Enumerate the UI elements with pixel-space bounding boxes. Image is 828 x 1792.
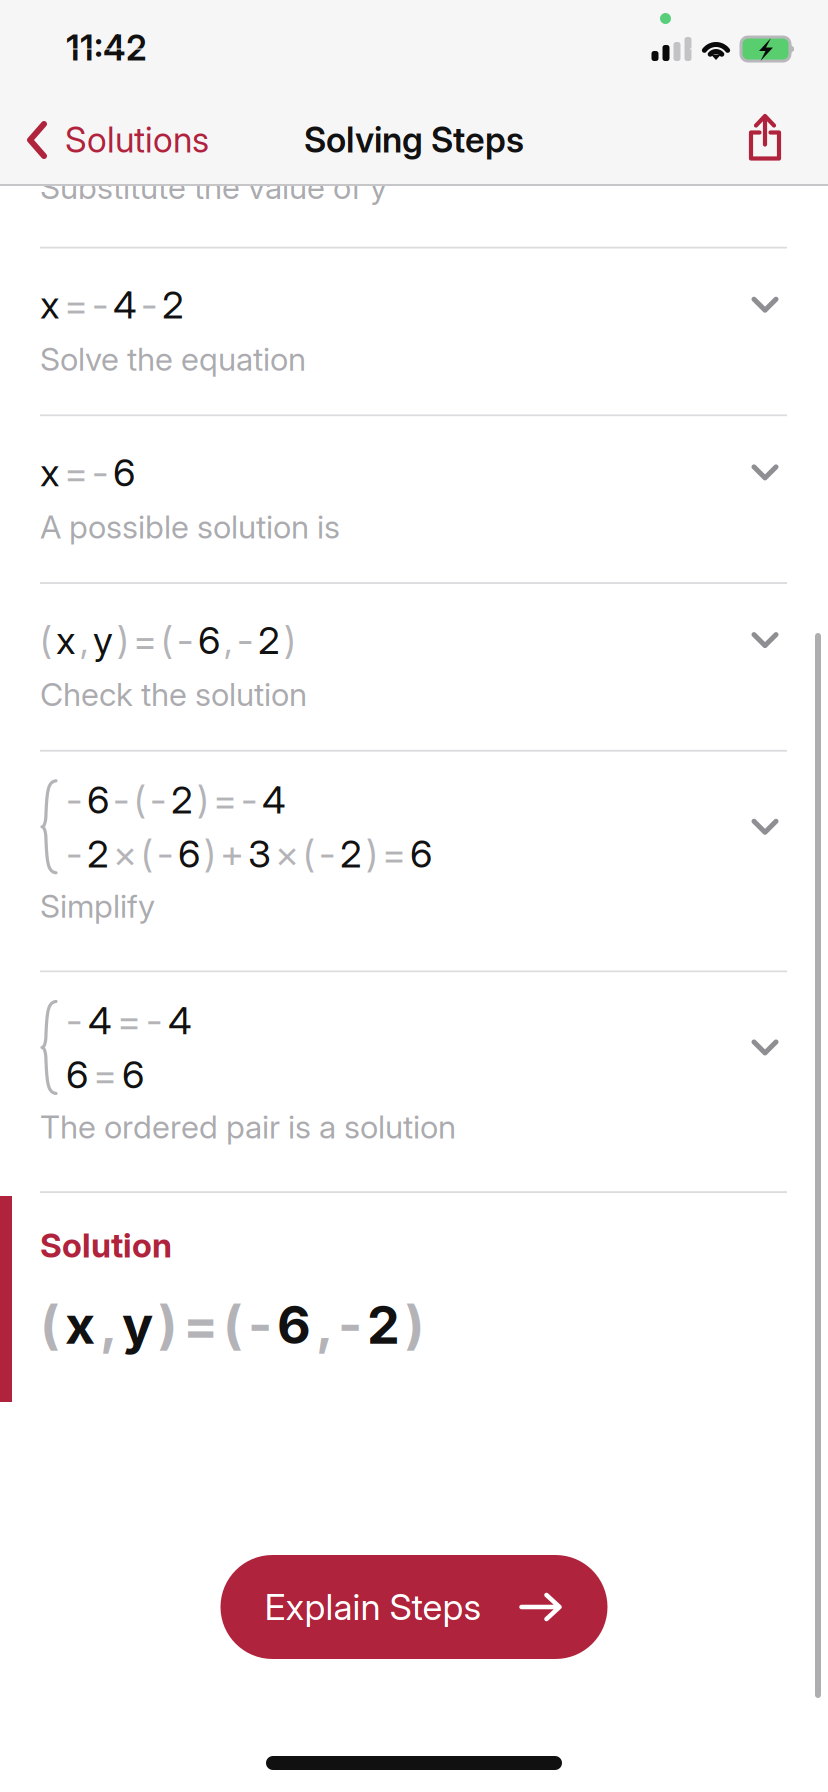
staticText: ( <box>134 777 146 823</box>
staticText: Explain Steps <box>264 1585 481 1629</box>
staticText: = <box>93 1051 117 1097</box>
staticText: 4 <box>88 997 112 1043</box>
staticText: 2 <box>171 777 193 823</box>
button[interactable]: x <box>0 416 828 584</box>
staticText: ) <box>405 1293 425 1356</box>
staticText: ) <box>284 617 296 663</box>
staticText: 4 <box>113 282 137 328</box>
staticText: 3 <box>248 831 271 877</box>
staticText: 6 <box>113 449 135 495</box>
staticText: = <box>213 777 237 823</box>
staticText: - <box>92 449 109 495</box>
staticText: = <box>64 449 88 495</box>
staticText: - <box>237 617 254 663</box>
staticText: Check the solution <box>40 675 307 714</box>
staticText: 2 <box>258 617 280 663</box>
staticText: ) <box>366 831 378 877</box>
staticText: , <box>316 1293 333 1356</box>
staticText: - <box>66 997 83 1043</box>
staticText: - <box>157 831 174 877</box>
staticText: ( <box>40 617 52 663</box>
staticText: × <box>275 831 299 877</box>
staticText: - <box>92 282 109 328</box>
staticText: 6 <box>87 777 109 823</box>
staticText: , <box>100 1293 117 1356</box>
staticText: ( <box>141 831 153 877</box>
staticText: 6 <box>66 1051 88 1097</box>
button[interactable]: Explain Steps <box>220 1555 607 1659</box>
staticText: ( <box>40 1293 60 1356</box>
staticText: , <box>80 617 89 663</box>
staticText: - <box>241 777 258 823</box>
staticText: × <box>113 831 137 877</box>
button[interactable]: - <box>0 972 828 1193</box>
staticText: = <box>133 617 157 663</box>
button[interactable]: ( <box>0 584 828 752</box>
staticText: 6 <box>122 1051 144 1097</box>
staticText: Solutions <box>65 119 209 161</box>
staticText: 6 <box>178 831 200 877</box>
staticText: 2 <box>340 831 362 877</box>
staticText: Solution <box>40 1225 172 1265</box>
staticText: - <box>248 1293 272 1356</box>
button[interactable]: Share <box>748 96 828 184</box>
button[interactable]: x <box>0 249 828 416</box>
staticText: - <box>319 831 336 877</box>
staticText: ) <box>204 831 216 877</box>
staticText: 4 <box>262 777 286 823</box>
staticText: ) <box>158 1293 178 1356</box>
staticText: x <box>56 617 76 663</box>
staticText: A possible solution is <box>40 507 340 546</box>
staticText: - <box>141 282 158 328</box>
staticText: + <box>220 831 244 877</box>
staticText: 6 <box>410 831 432 877</box>
staticText: y <box>122 1293 153 1356</box>
staticText: 2 <box>87 831 109 877</box>
staticText: x <box>65 1293 95 1356</box>
staticText: - <box>66 831 83 877</box>
staticText: = <box>117 997 141 1043</box>
staticText: = <box>64 282 88 328</box>
staticText: = <box>382 831 406 877</box>
staticText: ( <box>223 1293 243 1356</box>
staticText: - <box>66 777 83 823</box>
staticText: x <box>40 449 60 495</box>
staticText: Substitute the value of y <box>40 168 387 207</box>
staticText: Simplify <box>40 887 155 925</box>
staticText: 2 <box>162 282 184 328</box>
staticText: Solve the equation <box>40 340 306 378</box>
staticText: The ordered pair is a solution <box>40 1107 456 1146</box>
staticText: ( <box>161 617 173 663</box>
staticText: - <box>338 1293 362 1356</box>
button[interactable]: - <box>0 752 828 972</box>
staticText: 11:42 <box>66 27 147 69</box>
staticText: 2 <box>367 1293 400 1356</box>
staticText: - <box>150 777 167 823</box>
staticText: - <box>177 617 194 663</box>
staticText: 4 <box>168 997 192 1043</box>
staticText: = <box>183 1293 218 1356</box>
staticText: 6 <box>198 617 220 663</box>
staticText: Solving Steps <box>304 119 524 161</box>
staticText: y <box>93 617 113 663</box>
staticText: ) <box>117 617 129 663</box>
staticText: - <box>146 997 163 1043</box>
button[interactable]: Solutions <box>0 96 209 184</box>
staticText: x <box>40 282 60 328</box>
staticText: ) <box>197 777 209 823</box>
staticText: 6 <box>277 1293 311 1356</box>
staticText: ( <box>303 831 315 877</box>
staticText: - <box>113 777 130 823</box>
staticText: , <box>224 617 233 663</box>
